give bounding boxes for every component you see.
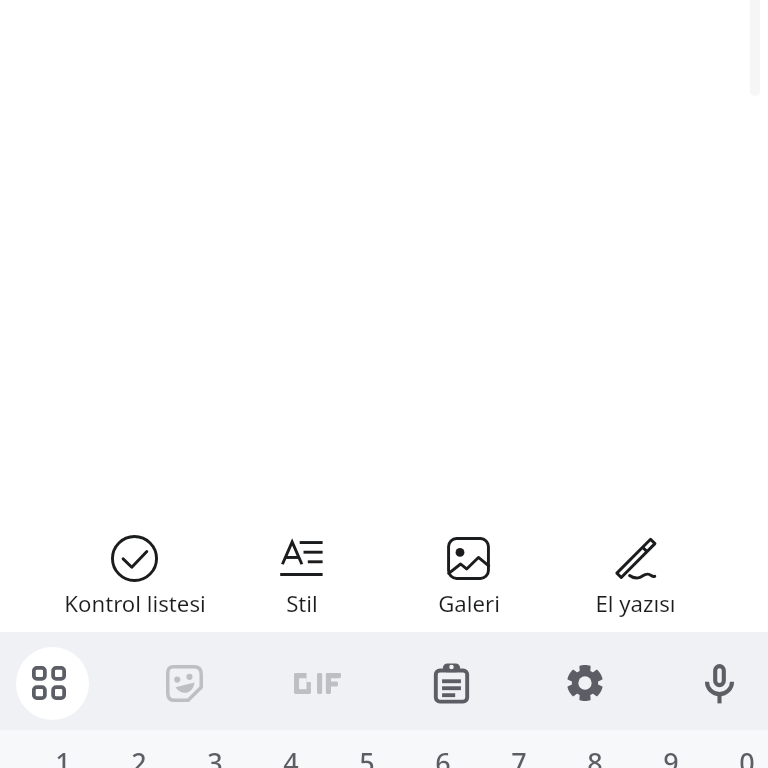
staticText: El yazısı [595,588,676,618]
staticText: 7 [511,744,527,768]
button[interactable]: Çıkartmalar [118,632,251,730]
button[interactable]: Kontrol listesi [51,514,218,632]
button[interactable]: 0 [709,730,768,768]
staticText: 3 [207,744,223,768]
button[interactable]: 3 [177,730,253,768]
staticText: Stil [286,588,318,618]
button[interactable]: 5 [329,730,405,768]
staticText: 6 [435,744,451,768]
button[interactable]: 4 [253,730,329,768]
staticText: 4 [283,744,299,768]
staticText: 8 [587,744,603,768]
button[interactable]: 9 [633,730,709,768]
button[interactable]: Stil [218,514,385,632]
button[interactable]: Sesle yazma [653,632,768,730]
staticText: Galeri [438,588,500,618]
button[interactable]: GIF [251,632,384,730]
staticText: 1 [55,744,71,768]
staticText: 2 [131,744,147,768]
button[interactable]: El yazısı [552,514,719,632]
staticText: 9 [663,744,679,768]
button[interactable]: 2 [101,730,177,768]
button[interactable]: Ayarlar [518,632,651,730]
staticText: 0 [739,744,755,768]
button[interactable]: 8 [557,730,633,768]
button[interactable]: 6 [405,730,481,768]
button[interactable]: 1 [25,730,101,768]
staticText: 5 [359,744,375,768]
button[interactable]: 7 [481,730,557,768]
button[interactable]: Galeri [385,514,552,632]
button[interactable]: Tüm özellikler [0,632,102,730]
staticText: Kontrol listesi [64,588,206,618]
button[interactable]: Pano [385,632,518,730]
